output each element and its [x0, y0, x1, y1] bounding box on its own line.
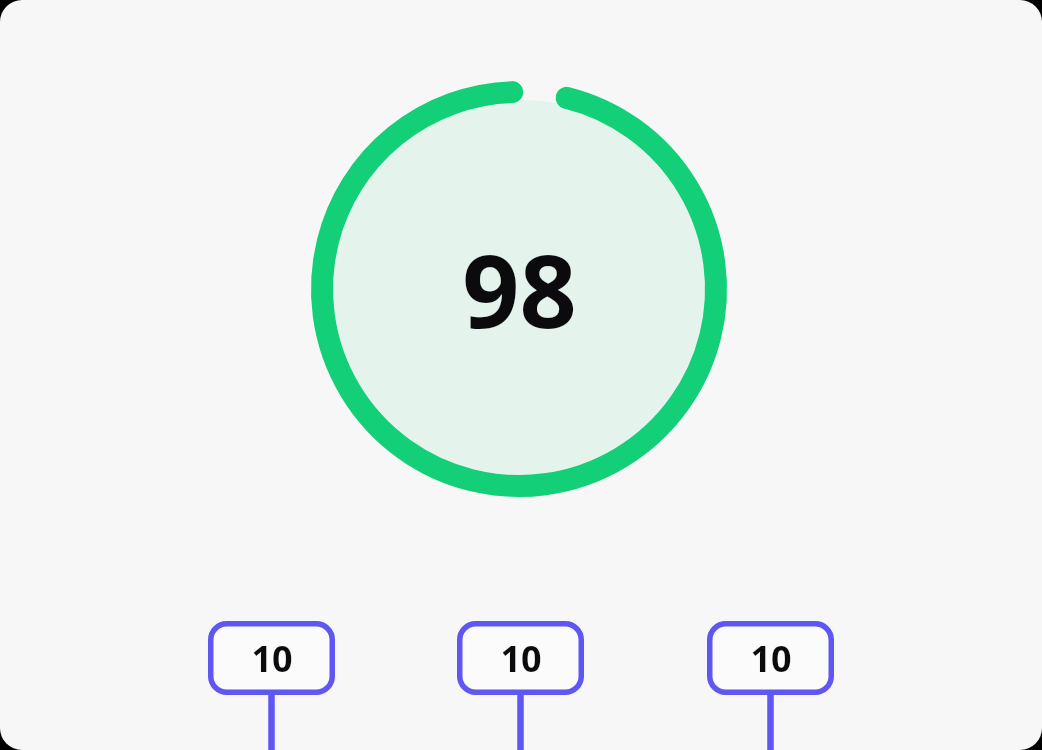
button[interactable]: 10	[208, 621, 336, 750]
staticText: 10	[750, 634, 792, 683]
button[interactable]: Score 98	[311, 81, 727, 497]
button[interactable]: 10	[707, 621, 835, 750]
button[interactable]: 10	[457, 621, 585, 750]
staticText: 10	[500, 634, 542, 683]
staticText: 98	[462, 221, 577, 357]
staticText: 10	[251, 634, 293, 683]
